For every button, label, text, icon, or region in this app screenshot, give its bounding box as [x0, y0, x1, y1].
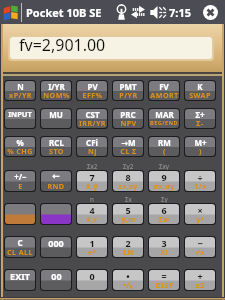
- staticText: Σx: [125, 195, 132, 203]
- staticText: Σ-: [196, 118, 204, 128]
- staticText: IRR/YR: [79, 118, 106, 128]
- staticText: •: [126, 270, 130, 280]
- staticText: 1/x: [194, 181, 207, 191]
- staticText: √x: [195, 247, 205, 257]
- staticText: +: [197, 270, 203, 280]
- button[interactable]: ←: [41, 171, 71, 191]
- button[interactable]: CST: [77, 109, 107, 128]
- staticText: RCL: [49, 137, 64, 146]
- button[interactable]: CFj: [77, 137, 107, 156]
- button[interactable]: 00: [41, 270, 71, 290]
- staticText: 000: [48, 237, 64, 247]
- button[interactable]: INPUT: [5, 109, 35, 128]
- staticText: σx,σy: [153, 181, 175, 191]
- staticText: 00: [51, 270, 62, 280]
- staticText: Σx2: [87, 162, 98, 170]
- button[interactable]: %: [5, 137, 35, 156]
- staticText: Pocket 10B SE: [26, 5, 102, 20]
- button[interactable]: 2: [113, 237, 143, 257]
- staticText: xP/YR: [9, 90, 32, 100]
- button[interactable]: EXIT: [5, 270, 35, 290]
- staticText: 7: [89, 171, 95, 181]
- button[interactable]: Connection: [131, 5, 145, 19]
- button[interactable]: 9: [149, 171, 179, 191]
- button[interactable]: 1: [77, 237, 107, 257]
- staticText: MU: [49, 109, 63, 118]
- button[interactable]: N: [5, 81, 35, 100]
- staticText: +/−: [14, 171, 27, 181]
- staticText: ←: [52, 171, 60, 181]
- button[interactable]: M+: [185, 137, 215, 156]
- button[interactable]: 6: [149, 204, 179, 224]
- staticText: −: [197, 237, 203, 247]
- button[interactable]: 000: [41, 237, 71, 257]
- button[interactable]: ÷: [185, 171, 215, 191]
- button[interactable]: 7: [77, 171, 107, 191]
- button[interactable]: 3: [149, 237, 179, 257]
- staticText: (: [163, 146, 166, 156]
- staticText: 6: [161, 204, 167, 214]
- button[interactable]: 5: [113, 204, 143, 224]
- button[interactable]: MAR: [149, 109, 179, 128]
- button[interactable]: RCL: [41, 137, 71, 156]
- staticText: MAR: [155, 109, 174, 118]
- staticText: x̄,ȳ: [86, 181, 98, 191]
- staticText: 7:15: [169, 5, 191, 20]
- staticText: PRC: [120, 109, 136, 118]
- button[interactable]: RM: [149, 137, 179, 156]
- staticText: Σy: [161, 195, 168, 203]
- staticText: SWAP: [189, 90, 211, 100]
- button[interactable]: +/−: [5, 171, 35, 191]
- button[interactable]: I/YR: [41, 81, 71, 100]
- button[interactable]: K: [185, 81, 215, 100]
- staticText: n: [90, 195, 94, 203]
- button[interactable]: Signal: [116, 4, 127, 20]
- button[interactable]: Close: [202, 4, 219, 21]
- button[interactable]: →M: [113, 137, 143, 156]
- button[interactable]: 4: [77, 204, 107, 224]
- staticText: N: [17, 81, 24, 90]
- staticText: ×: [197, 204, 203, 214]
- staticText: BEG/END: [150, 119, 178, 127]
- staticText: INPUT: [8, 109, 32, 118]
- staticText: CFj: [86, 137, 98, 146]
- button[interactable]: ×: [185, 204, 215, 224]
- button[interactable]: Purple shift: [41, 204, 71, 224]
- staticText: →M: [121, 137, 136, 146]
- button[interactable]: PRC: [113, 109, 143, 128]
- staticText: EXIT: [10, 270, 30, 280]
- staticText: yˣ: [196, 214, 204, 224]
- staticText: NPV: [120, 118, 137, 128]
- button[interactable]: Volume: [150, 6, 165, 19]
- staticText: Σxy: [159, 162, 169, 170]
- button[interactable]: FV: [149, 81, 179, 100]
- staticText: •/₀: [123, 280, 133, 290]
- staticText: 1: [89, 237, 95, 247]
- button[interactable]: 8: [113, 171, 143, 191]
- button[interactable]: =: [149, 270, 179, 290]
- button[interactable]: +: [185, 270, 215, 290]
- button[interactable]: •: [113, 270, 143, 290]
- button[interactable]: MU: [41, 109, 71, 128]
- staticText: FV: [159, 81, 169, 90]
- button[interactable]: PV: [77, 81, 107, 100]
- button[interactable]: −: [185, 237, 215, 257]
- staticText: X!: [160, 247, 168, 257]
- button[interactable]: C: [5, 237, 35, 257]
- staticText: PMT: [119, 81, 137, 90]
- staticText: %: [16, 137, 24, 146]
- staticText: PV: [87, 81, 98, 90]
- staticText: ÷: [197, 171, 203, 181]
- button[interactable]: PMT: [113, 81, 143, 100]
- staticText: CL Σ: [120, 146, 137, 156]
- button[interactable]: Σ+: [185, 109, 215, 128]
- staticText: 4: [89, 204, 95, 214]
- staticText: % CHG: [7, 146, 33, 156]
- staticText: I/YR: [48, 81, 65, 90]
- staticText: STO: [49, 146, 64, 156]
- button[interactable]: 0: [77, 270, 107, 290]
- staticText: RM: [158, 137, 171, 146]
- button[interactable]: Orange shift: [5, 204, 35, 224]
- staticText: fv=2,901.00: [19, 37, 106, 56]
- staticText: Σw: [158, 214, 170, 224]
